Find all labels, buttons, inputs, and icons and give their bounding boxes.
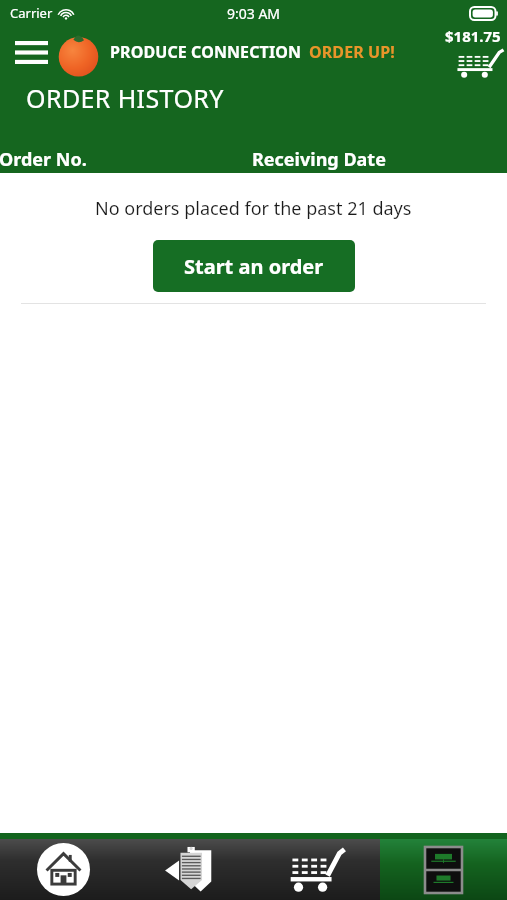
- staticText: PRODUCE CONNECTION: [110, 41, 302, 63]
- staticText: Carrier: [10, 4, 53, 22]
- button[interactable]: Order history: [126, 839, 253, 900]
- staticText: $181.75: [445, 26, 501, 46]
- staticText: No orders placed for the past 21 days: [95, 196, 412, 221]
- staticText: Order No.: [0, 147, 87, 172]
- staticText: ORDER UP!: [309, 41, 395, 63]
- staticText: Receiving Date: [252, 147, 386, 172]
- staticText: 9:03 AM: [227, 4, 281, 23]
- button[interactable]: Home: [0, 839, 126, 900]
- button[interactable]: Start an order: [153, 240, 355, 292]
- button[interactable]: Cart total $181.75: [440, 26, 504, 78]
- button[interactable]: Inventory: [380, 839, 507, 900]
- staticText: ORDER HISTORY: [26, 81, 224, 115]
- button[interactable]: Cart: [253, 839, 380, 900]
- button[interactable]: Menu: [10, 31, 52, 73]
- staticText: Start an order: [184, 253, 324, 280]
